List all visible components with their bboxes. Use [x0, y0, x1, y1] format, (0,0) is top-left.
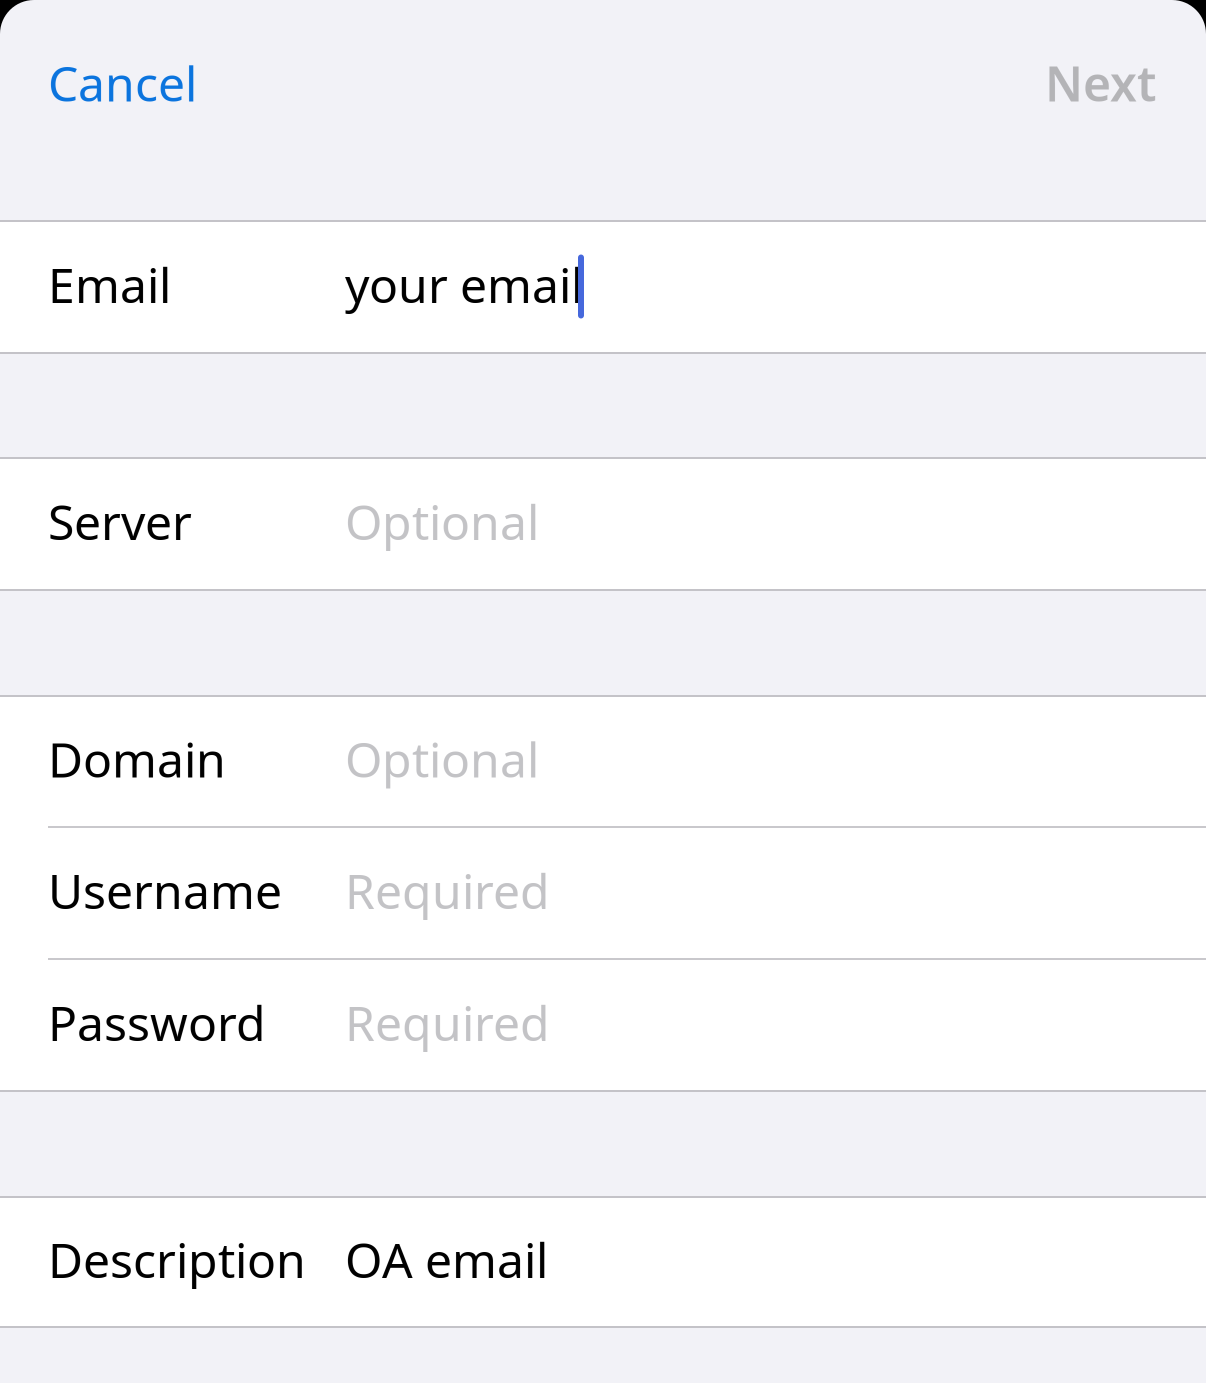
staticText: Next [1045, 51, 1156, 115]
staticText: OA email [345, 1228, 548, 1291]
staticText: Required [345, 859, 550, 922]
staticText: Optional [345, 727, 539, 791]
button[interactable]: Cancel [0, 0, 221, 137]
staticText: Password [48, 991, 266, 1054]
button[interactable]: Description [0, 1198, 1206, 1326]
staticText: Required [345, 991, 550, 1054]
button[interactable]: Server [0, 459, 1206, 589]
button[interactable]: Email [0, 222, 1206, 352]
button[interactable]: Username [0, 828, 1206, 958]
button[interactable]: Next [1021, 0, 1206, 137]
staticText: Username [48, 859, 282, 922]
staticText: Email [48, 253, 171, 316]
button[interactable]: Domain [0, 697, 1206, 826]
staticText: Optional [345, 490, 539, 553]
staticText: Cancel [48, 51, 197, 115]
staticText: Description [48, 1228, 306, 1291]
staticText: your email [345, 253, 583, 316]
staticText: Server [48, 490, 192, 553]
staticText: Domain [48, 727, 226, 791]
button[interactable]: Password [0, 960, 1206, 1090]
